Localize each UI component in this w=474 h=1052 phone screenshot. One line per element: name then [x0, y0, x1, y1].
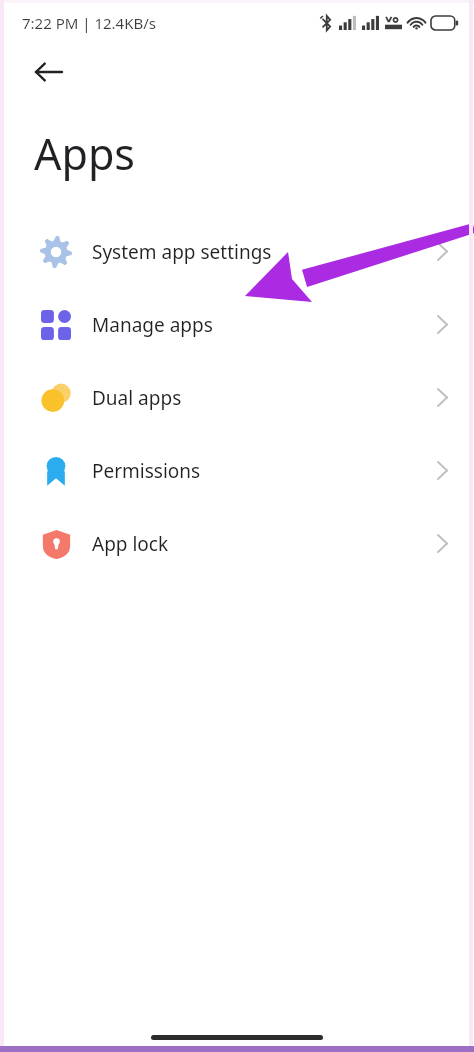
staticText: Dual apps	[92, 385, 182, 411]
button[interactable]: Permissions	[0, 434, 474, 507]
button[interactable]: Back	[22, 46, 74, 98]
button[interactable]: System app settings	[0, 215, 474, 288]
staticText: Apps	[34, 124, 135, 183]
button[interactable]: Dual apps	[0, 361, 474, 434]
staticText: App lock	[92, 531, 169, 557]
staticText: System app settings	[92, 239, 272, 265]
button[interactable]: Manage apps	[0, 288, 474, 361]
staticText: Manage apps	[92, 312, 213, 338]
staticText: 7:22 PM | 12.4KB/s	[22, 13, 156, 33]
staticText: Permissions	[92, 458, 201, 484]
button[interactable]: App lock	[0, 507, 474, 580]
